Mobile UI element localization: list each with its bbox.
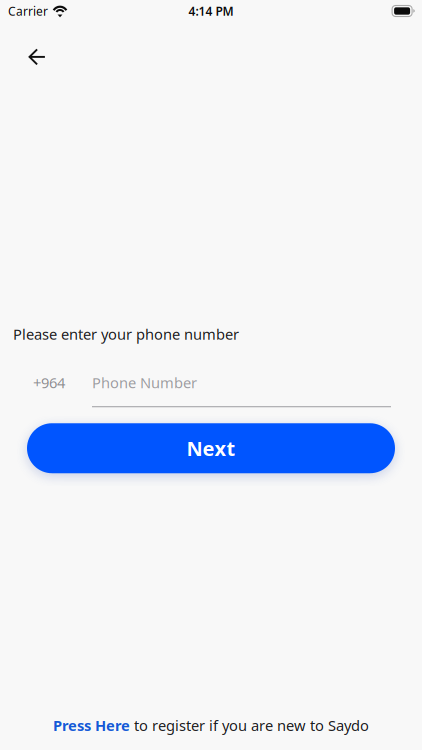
staticText: to register if you are new to Saydo [130, 715, 369, 735]
staticText: 4:14 PM [188, 3, 233, 19]
button[interactable]: Back [15, 35, 59, 79]
staticText: Please enter your phone number [13, 324, 239, 344]
button[interactable]: Press Here [53, 715, 369, 735]
staticText: Carrier [8, 3, 48, 19]
staticText: Next [186, 435, 235, 462]
staticText: Press Here [53, 715, 130, 735]
button[interactable]: Next [27, 423, 395, 473]
staticText: +964 [33, 373, 65, 392]
staticText: Phone Number [92, 373, 197, 392]
